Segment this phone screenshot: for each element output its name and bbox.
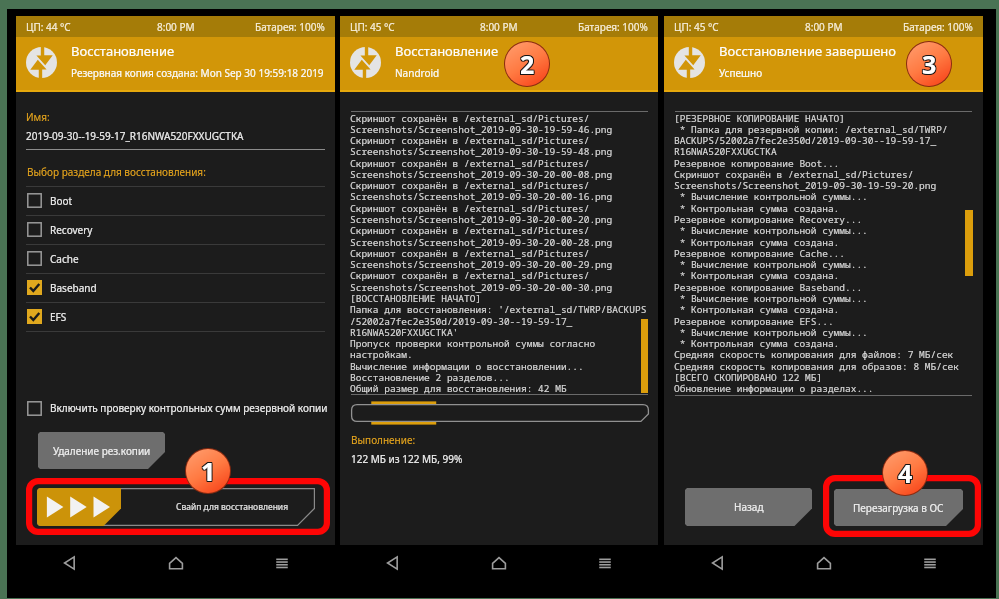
- staticText: ЦП: 45 °C: [674, 20, 719, 34]
- button[interactable]: Home: [771, 545, 877, 581]
- staticText: 4: [897, 456, 912, 490]
- staticText: Скриншот сохранён в /external_sd/Picture…: [350, 179, 590, 192]
- staticText: Screenshots/Screenshot_2019-09-30-20-00-…: [350, 168, 613, 181]
- staticText: 1: [202, 453, 217, 487]
- staticText: настройкам.: [350, 348, 413, 361]
- staticText: * Вычисление контрольной суммы...: [674, 292, 868, 305]
- staticText: 4: [899, 455, 914, 489]
- staticText: 1: [202, 455, 217, 489]
- staticText: 1: [202, 454, 217, 488]
- staticText: * Контрольная сумма создана.: [674, 337, 840, 350]
- staticText: 3: [921, 46, 936, 80]
- staticText: Baseband: [50, 281, 97, 295]
- staticText: Общий размер для восстановления: 42 МБ: [350, 382, 567, 395]
- staticText: 4: [898, 455, 913, 489]
- staticText: 3: [923, 47, 938, 81]
- staticText: Резервное копирование Recovery...: [674, 213, 863, 226]
- button[interactable]: Recovery: [26, 215, 325, 244]
- staticText: 4: [898, 457, 913, 491]
- staticText: 2: [519, 48, 534, 82]
- staticText: Screenshots/Screenshot_2019-09-30-20-00-…: [350, 213, 613, 226]
- staticText: Папка для восстановления: '/external_sd/…: [350, 303, 647, 316]
- staticText: Скриншот сохранён в /external_sd/Picture…: [350, 269, 590, 282]
- staticText: * Контрольная сумма создана.: [674, 269, 840, 282]
- button[interactable]: Включить проверку контрольных сумм резер…: [27, 397, 335, 419]
- staticText: Скриншот сохранён в /external_sd/Picture…: [674, 168, 914, 181]
- staticText: * Контрольная сумма создана.: [674, 236, 840, 249]
- button[interactable]: Baseband: [26, 273, 325, 302]
- staticText: Выбор раздела для восстановления:: [27, 165, 206, 179]
- staticText: * Вычисление контрольной суммы...: [674, 326, 868, 339]
- staticText: Средняя скорость копирования для файлов:…: [674, 348, 954, 361]
- staticText: 1: [200, 453, 215, 487]
- staticText: 2: [519, 46, 534, 80]
- staticText: 3: [921, 48, 936, 82]
- button[interactable]: Cache: [26, 244, 325, 273]
- button[interactable]: Back: [16, 545, 123, 581]
- staticText: Скриншот сохранён в /external_sd/Picture…: [350, 247, 590, 260]
- staticText: Screenshots/Screenshot_2019-09-30-19-59-…: [350, 123, 613, 136]
- staticText: Имя:: [26, 110, 50, 124]
- staticText: Батарея: 100%: [255, 20, 325, 34]
- staticText: Восстановление 2 разделов...: [350, 371, 510, 384]
- staticText: 2: [521, 47, 536, 81]
- staticText: * Вычисление контрольной суммы...: [674, 224, 868, 237]
- staticText: ЦП: 45 °C: [350, 20, 395, 34]
- staticText: 3: [921, 47, 936, 81]
- button[interactable]: Назад: [685, 488, 812, 526]
- staticText: 2: [519, 47, 534, 81]
- staticText: 122 МБ из 122 МБ, 99%: [351, 452, 463, 466]
- staticText: Скриншот сохранён в /external_sd/Picture…: [350, 202, 590, 215]
- staticText: 2019-09-30--19-59-17_R16NWA520FXXUGCTKA: [26, 129, 244, 143]
- staticText: Скриншот сохранён в /external_sd/Picture…: [350, 112, 590, 125]
- staticText: Резервное копирование Cache...: [674, 247, 846, 260]
- staticText: 4: [898, 456, 913, 490]
- staticText: Назад: [734, 500, 764, 514]
- button[interactable]: Back: [340, 545, 446, 581]
- staticText: * Вычисление контрольной суммы...: [674, 190, 868, 203]
- staticText: BACKUPS/52002a7fec2e350d/2019-09-30--19-…: [674, 134, 937, 147]
- staticText: 1: [201, 454, 216, 488]
- button[interactable]: Home: [123, 545, 229, 581]
- staticText: ЦП: 44 °C: [26, 20, 71, 34]
- staticText: 1: [201, 455, 216, 489]
- button[interactable]: Свайп для восстановления: [37, 488, 315, 526]
- button[interactable]: Boot: [26, 186, 325, 215]
- staticText: 8:00 PM: [805, 20, 843, 34]
- staticText: 3: [922, 47, 937, 81]
- staticText: * Контрольная сумма создана.: [674, 202, 840, 215]
- staticText: Скриншот сохранён в /external_sd/Picture…: [350, 224, 590, 237]
- staticText: Резервное копирование Boot...: [674, 157, 840, 170]
- button[interactable]: Перезагрузка в ОС: [834, 489, 963, 526]
- staticText: Cache: [50, 252, 79, 266]
- staticText: 1: [201, 453, 216, 487]
- staticText: 4: [899, 457, 914, 491]
- staticText: /52002a7fec2e350d/2019-09-30--19-59-17_: [350, 315, 573, 328]
- staticText: Вычисление информации о восстановлении..…: [350, 360, 584, 373]
- staticText: Восстановление: [395, 42, 499, 60]
- button[interactable]: Menu: [552, 545, 658, 581]
- staticText: 2: [520, 48, 535, 82]
- button[interactable]: Menu: [877, 545, 983, 581]
- staticText: Пропуск проверки контрольной суммы согла…: [350, 337, 596, 350]
- staticText: Удаление рез.копии: [53, 444, 151, 458]
- staticText: Nandroid: [395, 66, 440, 80]
- staticText: Восстановление завершено: [719, 42, 897, 60]
- staticText: 3: [923, 46, 938, 80]
- staticText: Резервная копия создана: Mon Sep 30 19:5…: [71, 66, 324, 80]
- staticText: Screenshots/Screenshot_2019-09-30-19-59-…: [350, 145, 613, 158]
- button[interactable]: Home: [446, 545, 552, 581]
- staticText: Перезагрузка в ОС: [853, 501, 944, 515]
- staticText: Восстановление: [71, 42, 175, 60]
- staticText: Включить проверку контрольных сумм резер…: [50, 401, 328, 415]
- staticText: [ВОССТАНОВЛЕНИЕ НАЧАТО]: [350, 292, 482, 305]
- staticText: Выполнение:: [351, 433, 416, 447]
- button[interactable]: Back: [664, 545, 771, 581]
- button[interactable]: Удаление рез.копии: [38, 432, 165, 469]
- staticText: R16NWA520FXXUGCTKA: [674, 145, 777, 158]
- staticText: Резервное копирование EFS...: [674, 315, 834, 328]
- button[interactable]: EFS: [26, 302, 325, 331]
- button[interactable]: Menu: [229, 545, 335, 581]
- staticText: Обновление информации о разделах...: [674, 382, 874, 395]
- staticText: Recovery: [50, 223, 93, 237]
